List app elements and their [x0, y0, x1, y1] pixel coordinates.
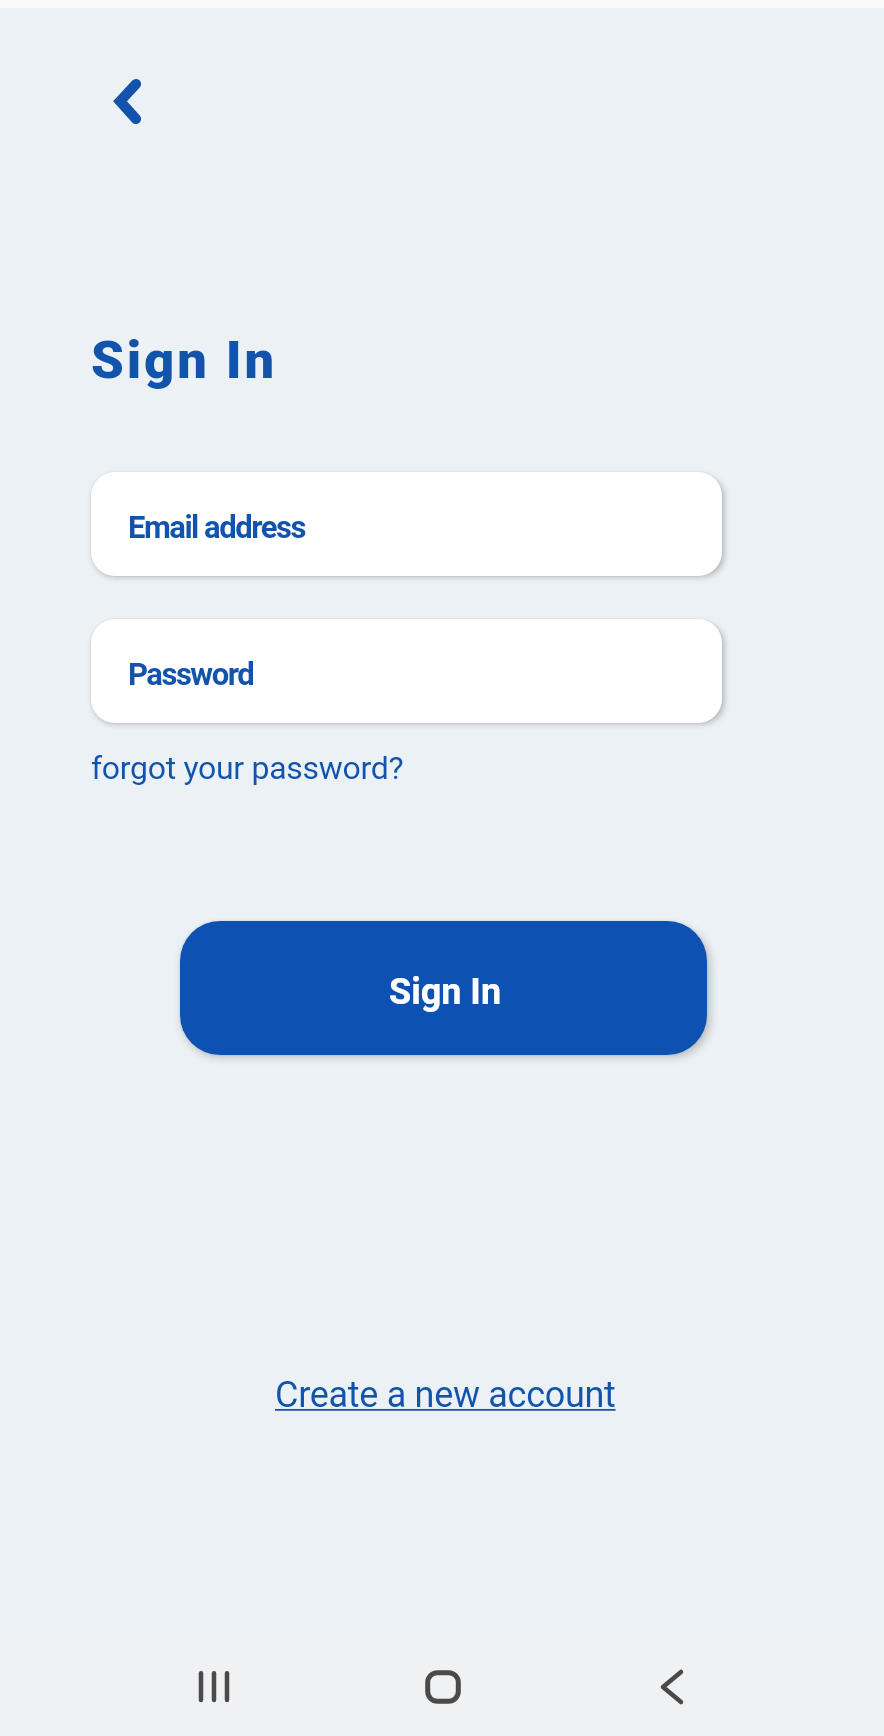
button[interactable]: forgot your password?	[91, 749, 404, 787]
button[interactable]	[418, 1670, 468, 1714]
button[interactable]: Sign In	[180, 921, 707, 1055]
staticText: Password	[128, 656, 254, 692]
staticText: Sign In	[91, 329, 278, 391]
button[interactable]: Password	[91, 619, 722, 723]
button[interactable]	[650, 1662, 694, 1706]
button[interactable]	[190, 1666, 238, 1708]
button[interactable]: Email address	[91, 472, 722, 576]
button[interactable]	[96, 69, 160, 133]
staticText: Email address	[128, 509, 305, 545]
staticText: Sign In	[389, 971, 502, 1013]
button[interactable]: Create a new account	[275, 1374, 616, 1416]
